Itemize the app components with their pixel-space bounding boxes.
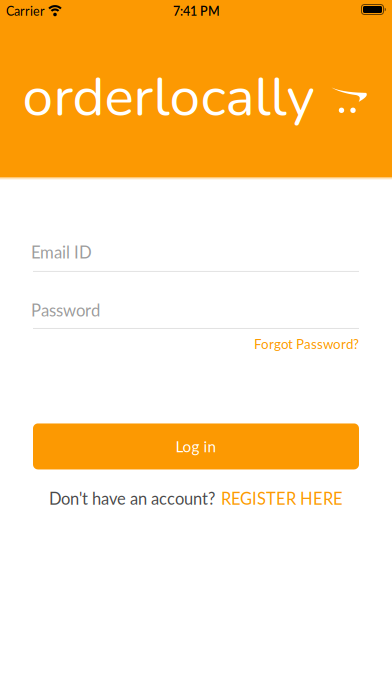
- button[interactable]: REGISTER HERE: [221, 488, 343, 508]
- staticText: Email ID: [31, 242, 92, 262]
- button[interactable]: Email ID: [33, 242, 359, 272]
- button[interactable]: Forgot Password?: [254, 336, 359, 352]
- button[interactable]: Log in: [33, 423, 359, 469]
- staticText: REGISTER HERE: [221, 488, 343, 508]
- button[interactable]: Password: [33, 300, 359, 329]
- staticText: Password: [31, 300, 100, 320]
- staticText: Log in: [175, 437, 216, 456]
- staticText: orderlocally: [22, 60, 314, 135]
- staticText: Don't have an account?: [49, 488, 215, 508]
- staticText: Carrier: [6, 3, 45, 18]
- staticText: 7:41 PM: [173, 3, 220, 18]
- staticText: Forgot Password?: [254, 336, 359, 352]
